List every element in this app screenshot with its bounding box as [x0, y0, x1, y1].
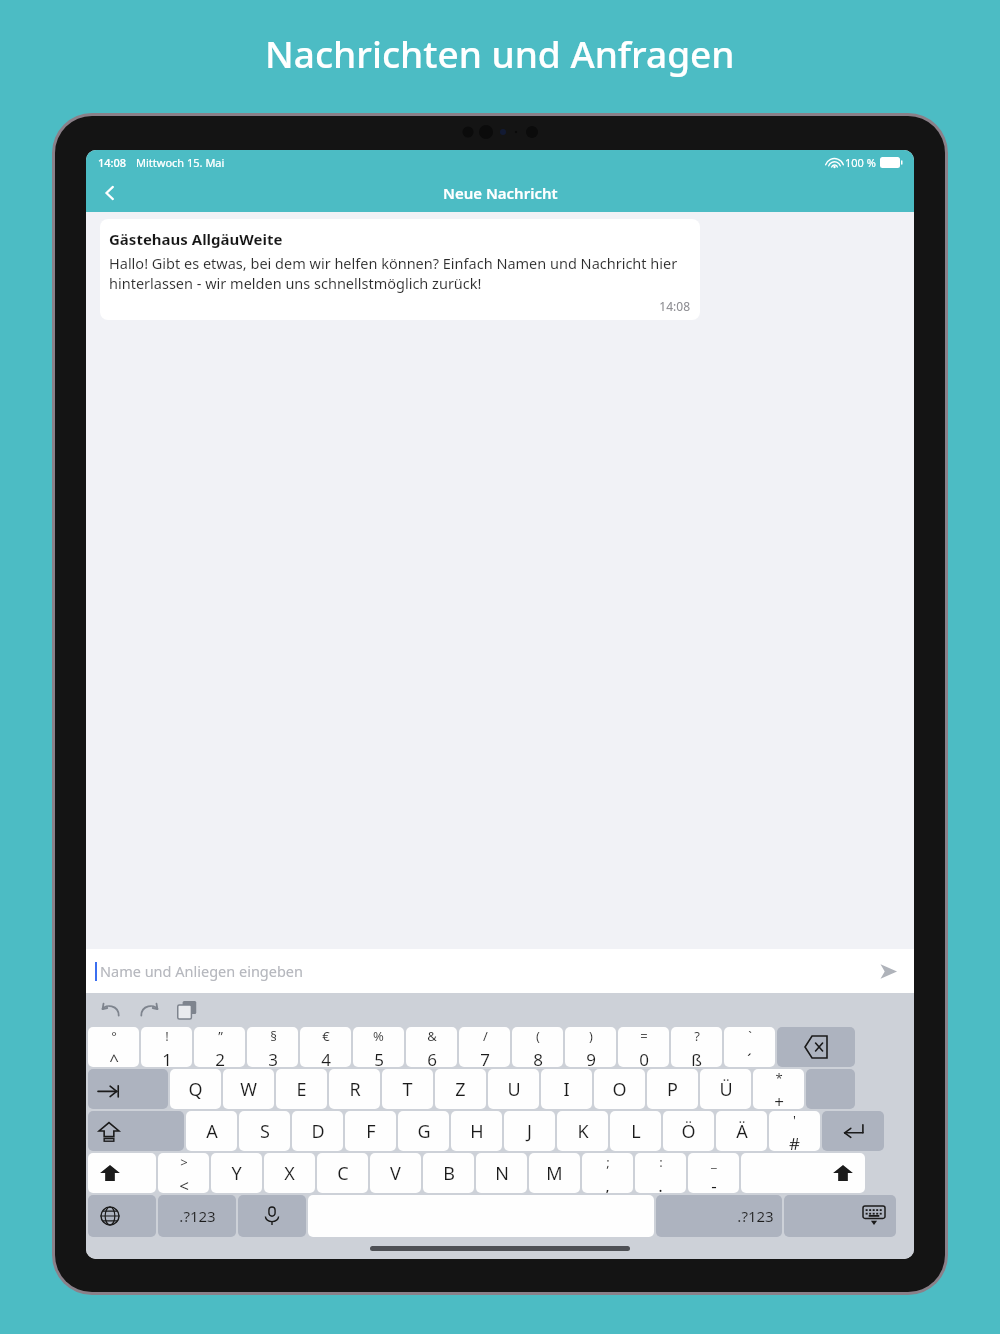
staticText: ” — [218, 1027, 223, 1045]
button[interactable]: E — [276, 1069, 327, 1109]
button[interactable]: Löschen — [777, 1027, 855, 1067]
staticText: 7 — [480, 1048, 490, 1067]
staticText: J — [527, 1119, 532, 1144]
button[interactable]: ' — [769, 1111, 820, 1151]
staticText: P — [667, 1077, 678, 1102]
button[interactable]: ; — [582, 1153, 633, 1193]
staticText: _ — [711, 1153, 717, 1171]
button[interactable]: A — [186, 1111, 237, 1151]
button[interactable]: Senden — [874, 957, 902, 985]
button[interactable]: D — [292, 1111, 343, 1151]
staticText: U — [507, 1077, 521, 1102]
staticText: E — [296, 1077, 307, 1102]
button[interactable]: Wiederholen — [130, 995, 168, 1025]
button[interactable]: Ä — [716, 1111, 767, 1151]
button[interactable]: Umschalt rechts — [741, 1153, 865, 1193]
button[interactable]: Z — [435, 1069, 486, 1109]
button[interactable]: W — [223, 1069, 274, 1109]
button[interactable]: R — [329, 1069, 380, 1109]
button[interactable]: Sprache wechseln — [88, 1195, 156, 1237]
staticText: L — [631, 1119, 641, 1144]
button[interactable]: & — [406, 1027, 457, 1067]
staticText: 14:08 — [109, 298, 690, 314]
button[interactable]: Einfügen — [168, 995, 206, 1025]
button[interactable]: / — [459, 1027, 510, 1067]
button[interactable]: Umschalt — [88, 1153, 156, 1193]
staticText: .?123 — [179, 1206, 216, 1226]
button[interactable]: B — [423, 1153, 474, 1193]
button[interactable]: ! — [141, 1027, 192, 1067]
staticText: G — [417, 1119, 431, 1144]
staticText: 14:08 — [98, 155, 127, 170]
staticText: ! — [165, 1027, 169, 1045]
button[interactable]: Ö — [663, 1111, 714, 1151]
button[interactable]: = — [618, 1027, 669, 1067]
button[interactable]: O — [594, 1069, 645, 1109]
button[interactable]: Eingabe — [822, 1111, 884, 1151]
staticText: Ä — [736, 1119, 748, 1144]
button[interactable]: Feststelltaste — [88, 1111, 184, 1151]
staticText: ß — [691, 1048, 702, 1067]
button[interactable] — [806, 1069, 855, 1109]
button[interactable]: F — [345, 1111, 396, 1151]
staticText: ; — [606, 1153, 610, 1171]
button[interactable]: G — [398, 1111, 449, 1151]
button[interactable]: .?123 — [158, 1195, 236, 1237]
button[interactable]: ` — [724, 1027, 775, 1067]
button[interactable]: U — [488, 1069, 539, 1109]
button[interactable]: Name und Anliegen eingeben — [95, 949, 902, 993]
staticText: + — [774, 1090, 784, 1109]
button[interactable]: Zurück — [86, 174, 134, 212]
staticText: 5 — [374, 1048, 384, 1067]
button[interactable]: € — [300, 1027, 351, 1067]
button[interactable]: T — [382, 1069, 433, 1109]
button[interactable]: K — [557, 1111, 608, 1151]
button[interactable]: Gästehaus AllgäuWeite — [100, 219, 700, 320]
button[interactable]: C — [317, 1153, 368, 1193]
button[interactable]: H — [451, 1111, 502, 1151]
button[interactable]: ” — [194, 1027, 245, 1067]
button[interactable]: L — [610, 1111, 661, 1151]
button[interactable]: : — [635, 1153, 686, 1193]
staticText: Ö — [681, 1119, 696, 1144]
button[interactable]: * — [753, 1069, 804, 1109]
button[interactable]: § — [247, 1027, 298, 1067]
button[interactable]: Diktieren — [238, 1195, 306, 1237]
button[interactable]: Ü — [700, 1069, 751, 1109]
button[interactable]: J — [504, 1111, 555, 1151]
staticText: 1 — [162, 1048, 172, 1067]
staticText: V — [390, 1161, 401, 1186]
button[interactable]: ) — [565, 1027, 616, 1067]
button[interactable]: Tastatur ausblenden — [784, 1195, 896, 1237]
staticText: * — [775, 1069, 783, 1087]
button[interactable]: S — [239, 1111, 290, 1151]
staticText: & — [427, 1027, 437, 1045]
button[interactable]: I — [541, 1069, 592, 1109]
button[interactable]: N — [476, 1153, 527, 1193]
button[interactable]: Rückgängig — [92, 995, 130, 1025]
button[interactable]: P — [647, 1069, 698, 1109]
staticText: . — [658, 1174, 663, 1193]
staticText: S — [260, 1119, 270, 1144]
staticText: ( — [536, 1027, 540, 1045]
button[interactable]: ( — [512, 1027, 563, 1067]
button[interactable]: Tabulator — [88, 1069, 168, 1109]
button[interactable]: % — [353, 1027, 404, 1067]
button[interactable]: Q — [170, 1069, 221, 1109]
button[interactable]: _ — [688, 1153, 739, 1193]
button[interactable]: ? — [671, 1027, 722, 1067]
staticText: K — [577, 1119, 589, 1144]
button[interactable]: .?123 — [656, 1195, 782, 1237]
button[interactable]: ° — [88, 1027, 139, 1067]
staticText: A — [206, 1119, 218, 1144]
button[interactable]: V — [370, 1153, 421, 1193]
button[interactable]: Y — [211, 1153, 262, 1193]
staticText: ° — [111, 1027, 117, 1045]
staticText: § — [270, 1027, 277, 1045]
button[interactable]: > — [158, 1153, 209, 1193]
staticText: ´ — [747, 1048, 752, 1067]
button[interactable]: X — [264, 1153, 315, 1193]
staticText: ? — [694, 1027, 700, 1045]
button[interactable]: M — [529, 1153, 580, 1193]
